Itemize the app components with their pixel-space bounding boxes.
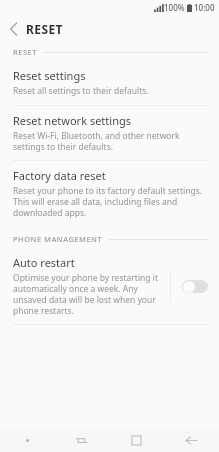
staticText: Reset settings — [13, 68, 86, 83]
button[interactable]: Menu — [0, 428, 54, 452]
button[interactable]: Factory data reset — [0, 161, 219, 226]
button[interactable]: Navigate up — [0, 16, 26, 42]
button[interactable]: Home — [109, 428, 164, 452]
staticText: 10:00 — [194, 2, 215, 13]
button[interactable]: Auto restart — [0, 248, 219, 324]
staticText: Reset your phone to its factory default … — [13, 185, 205, 218]
button[interactable]: Auto restart toggle — [171, 269, 219, 303]
staticText: Factory data reset — [13, 168, 106, 183]
staticText: PHONE MANAGEMENT — [13, 234, 103, 244]
button[interactable]: Recents — [54, 428, 109, 452]
staticText: Optimise your phone by restarting it aut… — [13, 272, 164, 316]
staticText: Auto restart — [13, 255, 75, 270]
staticText: Reset all settings to their defaults. — [13, 85, 149, 97]
staticText: RESET — [13, 47, 37, 57]
button[interactable]: Reset network settings — [0, 106, 219, 160]
staticText: Reset network settings — [13, 113, 131, 128]
button[interactable]: Back — [164, 428, 219, 452]
button[interactable]: Reset settings — [0, 61, 219, 105]
staticText: RESET — [26, 21, 63, 37]
staticText: Reset Wi-Fi, Bluetooth, and other networ… — [13, 130, 205, 152]
staticText: 100% — [164, 2, 185, 13]
